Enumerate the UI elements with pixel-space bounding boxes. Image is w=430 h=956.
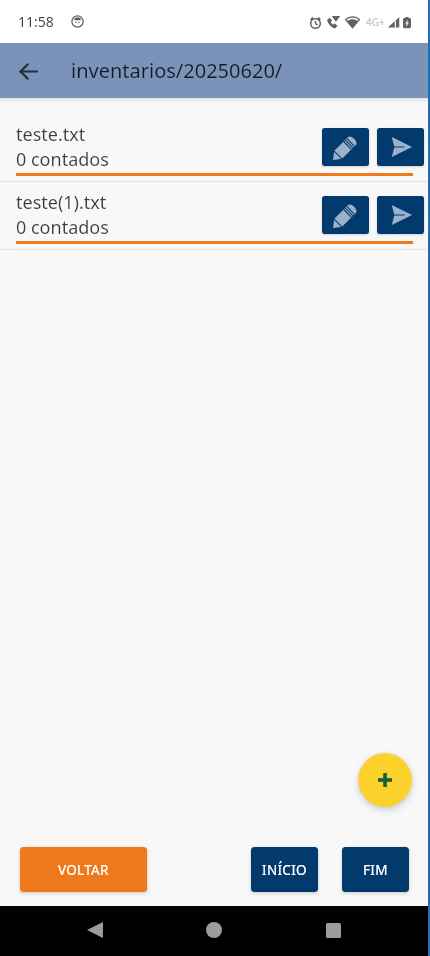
button[interactable]: Editar	[322, 196, 369, 234]
button[interactable]: Adicionar	[358, 753, 412, 807]
button[interactable]: Editar	[322, 128, 369, 166]
button[interactable]: Home	[192, 908, 236, 952]
staticText: 0 contados	[16, 147, 109, 172]
staticText: 11:58	[18, 12, 54, 31]
staticText: 4G+	[366, 15, 385, 29]
staticText: teste.txt	[16, 122, 86, 147]
button[interactable]: Enviar	[377, 128, 424, 166]
staticText: INÍCIO	[262, 861, 307, 879]
button[interactable]: Voltar	[9, 52, 47, 90]
staticText: FIM	[363, 861, 388, 879]
button[interactable]: INÍCIO	[251, 847, 318, 892]
button[interactable]: VOLTAR	[20, 847, 147, 892]
button[interactable]: Back	[73, 908, 117, 952]
button[interactable]: Recents	[311, 908, 355, 952]
button[interactable]: Enviar	[377, 196, 424, 234]
staticText: inventarios/20250620/	[71, 57, 283, 84]
button[interactable]: teste(1).txt	[0, 166, 430, 234]
button[interactable]: teste.txt	[0, 98, 430, 166]
staticText: 0 contados	[16, 215, 109, 240]
staticText: VOLTAR	[58, 861, 109, 879]
button[interactable]: FIM	[342, 847, 409, 892]
staticText: teste(1).txt	[16, 190, 107, 215]
